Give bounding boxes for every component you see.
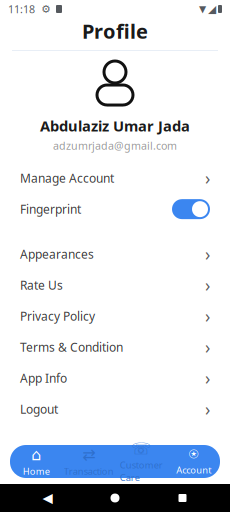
staticText: Profile [82,18,148,44]
button[interactable]: Privacy Policy [0,301,230,332]
staticText: Manage Account [20,170,114,186]
staticText: Home [23,465,50,477]
button[interactable]: Terms & Condition [0,332,230,363]
button[interactable]: Manage Account [0,163,230,194]
button[interactable]: ⌂ [10,445,62,478]
button[interactable]: ⍟ [167,445,220,478]
button[interactable]: Recent apps [162,484,202,512]
staticText: adzumrjada@gmail.com [53,138,177,153]
staticText: Logout [20,401,58,417]
staticText: › [205,367,210,390]
button[interactable]: Fingerprint [0,194,230,225]
staticText: Terms & Condition [20,339,123,355]
staticText: App Info [20,370,67,386]
staticText: Customer Care [120,459,163,483]
button[interactable]: Rate Us [0,270,230,301]
staticText: Transaction [64,465,114,477]
staticText: Appearances [20,246,94,262]
staticText: › [205,274,210,297]
staticText: › [205,336,210,359]
button[interactable]: ☏ [115,445,167,478]
staticText: › [205,243,210,266]
staticText: Privacy Policy [20,308,95,324]
staticText: ▼ [199,4,206,14]
button[interactable]: Appearances [0,239,230,270]
staticText: Abdulaziz Umar Jada [40,116,190,135]
button[interactable]: Home [95,484,135,512]
staticText: › [205,398,210,421]
staticText: ⚙ [41,3,51,15]
button[interactable]: ⇄ [62,445,115,478]
staticText: ⇄ [82,446,95,464]
button[interactable]: App Info [0,363,230,394]
staticText: ⍟ [189,447,199,463]
staticText: › [205,167,210,190]
staticText: ◀ [42,490,52,505]
staticText: Fingerprint [20,201,81,217]
staticText: Rate Us [20,277,63,293]
staticText: Account [176,464,211,476]
staticText: 11:18 [8,2,35,16]
staticText: ⌂ [31,446,41,464]
button[interactable]: Logout [0,394,230,425]
staticText: ◢ [208,3,216,15]
button[interactable]: Back [27,484,67,512]
staticText: › [205,305,210,328]
staticText: ☏ [131,439,151,458]
